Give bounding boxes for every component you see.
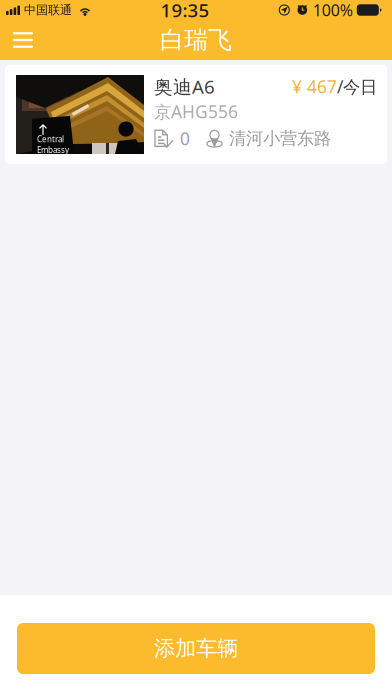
staticText: 京AHG556	[154, 100, 238, 123]
staticText: 中国联通	[24, 3, 72, 17]
staticText: 19:35	[160, 0, 209, 22]
button[interactable]: 添加车辆	[17, 623, 375, 674]
button[interactable]: Menu	[2, 20, 44, 60]
staticText: Embassy	[37, 144, 69, 155]
staticText: 清河小营东路	[229, 128, 331, 149]
staticText: /今日	[337, 75, 377, 98]
staticText: 奥迪A6	[154, 74, 215, 99]
staticText: ¥ 467	[292, 75, 337, 98]
staticText: 白瑞飞	[160, 25, 232, 55]
staticText: 0	[180, 127, 190, 150]
staticText: 100%	[313, 0, 353, 21]
button[interactable]: Central	[0, 60, 392, 164]
staticText: 添加车辆	[154, 635, 238, 662]
staticText: Central	[37, 134, 64, 144]
